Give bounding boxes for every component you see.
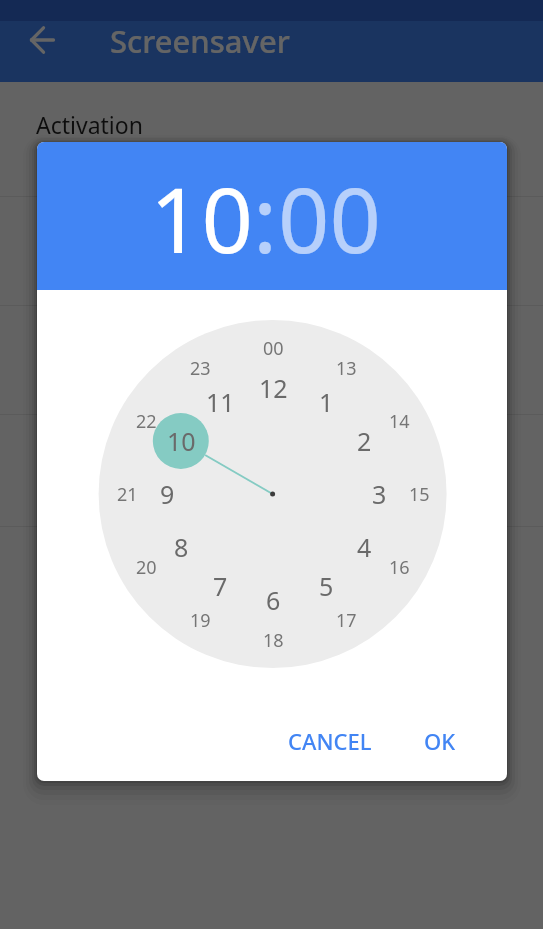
staticText: CANCEL xyxy=(288,726,372,756)
staticText: 12 xyxy=(259,371,288,405)
staticText: 8 xyxy=(174,530,189,564)
staticText: Screensaver xyxy=(110,20,290,62)
staticText: 20 xyxy=(136,555,157,580)
staticText: 14 xyxy=(389,409,410,434)
staticText: Activation xyxy=(36,109,143,140)
staticText: 10 xyxy=(167,424,196,458)
staticText: 22 xyxy=(136,409,157,434)
staticText: 2 xyxy=(357,424,372,458)
staticText: 21 xyxy=(117,482,138,507)
staticText: 11 xyxy=(206,385,235,419)
staticText: 7 xyxy=(213,569,228,603)
staticText: 15 xyxy=(409,482,430,507)
staticText: 17 xyxy=(336,608,357,633)
staticText: 10 xyxy=(150,157,253,280)
staticText: 23 xyxy=(190,356,211,381)
button[interactable]: CANCEL xyxy=(260,718,400,763)
staticText: 6 xyxy=(266,583,281,617)
staticText: 1 xyxy=(319,385,334,419)
staticText: OK xyxy=(424,726,456,756)
staticText: 00 xyxy=(263,336,284,361)
staticText: 3 xyxy=(372,477,387,511)
button[interactable] xyxy=(14,12,70,68)
staticText: 00 xyxy=(278,157,381,280)
button[interactable]: OK xyxy=(400,718,479,763)
staticText: 5 xyxy=(319,569,334,603)
staticText: 9 xyxy=(160,477,175,511)
staticText: 4 xyxy=(357,530,372,564)
staticText: 13 xyxy=(336,356,357,381)
staticText: 18 xyxy=(263,628,284,653)
staticText: : xyxy=(253,157,278,280)
staticText: 19 xyxy=(190,608,211,633)
staticText: 16 xyxy=(389,555,410,580)
